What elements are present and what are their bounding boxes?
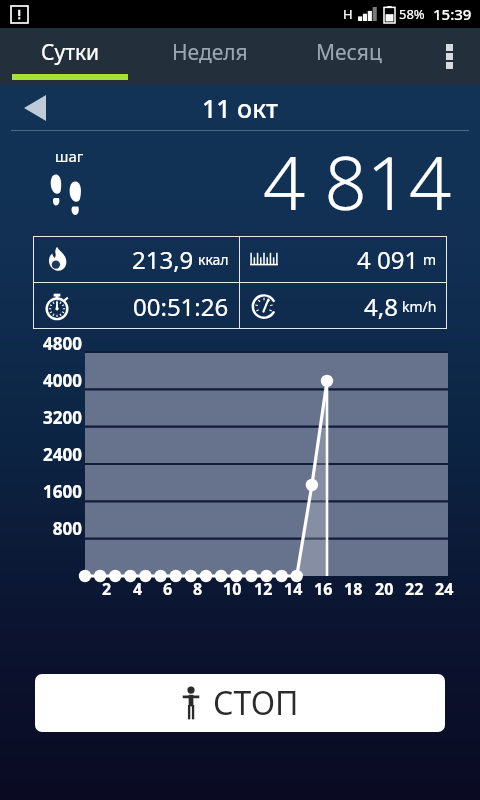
staticText: m [423,250,437,269]
staticText: 2 [102,578,112,600]
staticText: 24 [435,578,454,600]
button[interactable]: Сутки [0,28,140,85]
staticText: СТОП [213,681,299,725]
staticText: Месяц [316,38,382,67]
staticText: 4800 [43,332,82,355]
button[interactable]: More options [418,28,480,85]
staticText: 800 [52,517,82,540]
staticText: 3200 [43,406,82,429]
staticText: 22 [405,578,424,600]
button[interactable]: 00:51:26 [33,283,239,329]
button[interactable]: Месяц [279,28,418,85]
staticText: 58% [399,5,425,23]
staticText: 6 [163,578,173,600]
staticText: 4 [133,578,143,600]
staticText: 4 091 [357,243,419,276]
staticText: 14 [284,578,303,600]
staticText: 11 окт [202,91,278,125]
staticText: 00:51:26 [133,290,229,323]
staticText: 16 [314,578,333,600]
staticText: ккал [198,250,229,269]
button[interactable]: 4,8 [240,283,447,329]
button[interactable]: 213,9 [33,236,239,282]
button[interactable]: 4 091 [240,236,447,282]
staticText: 10 [223,578,242,600]
staticText: 1600 [43,480,82,503]
staticText: 4000 [43,369,82,392]
staticText: 18 [344,578,363,600]
staticText: 213,9 [132,243,194,276]
button[interactable]: Неделя [140,28,279,85]
staticText: Неделя [172,38,248,67]
staticText: шаг [55,146,84,166]
staticText: 15:39 [433,4,472,24]
staticText: H [343,5,353,23]
staticText: 8 [193,578,203,600]
staticText: 2400 [43,443,82,466]
staticText: 4,8 [364,290,398,323]
staticText: Сутки [41,38,100,67]
staticText: km/h [402,297,437,316]
staticText: 12 [254,578,273,600]
staticText: 4 814 [263,131,452,228]
button[interactable]: СТОП [35,674,445,732]
staticText: 20 [375,578,394,600]
button[interactable]: Previous day [18,91,52,125]
